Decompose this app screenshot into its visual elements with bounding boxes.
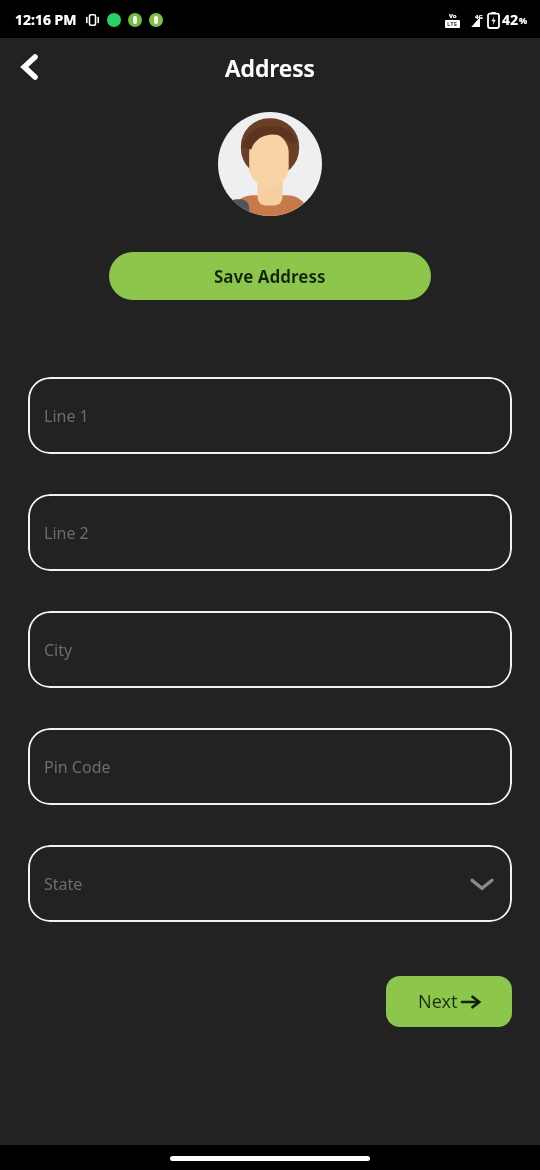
button[interactable]: Line 2 xyxy=(28,494,512,571)
staticText: City xyxy=(44,639,73,661)
staticText: Pin Code xyxy=(44,756,111,778)
button[interactable]: Line 1 xyxy=(28,377,512,454)
staticText: 42 xyxy=(502,10,519,29)
button[interactable]: Back xyxy=(8,45,52,89)
staticText: Address xyxy=(225,52,315,83)
staticText: Vo xyxy=(449,12,457,20)
staticText: % xyxy=(519,14,528,26)
button[interactable]: Save Address xyxy=(109,252,431,300)
staticText: Line 2 xyxy=(44,522,89,544)
button[interactable]: Pin Code xyxy=(28,728,512,805)
staticText: 12:16 PM xyxy=(15,10,77,29)
button[interactable]: City xyxy=(28,611,512,688)
staticText: State xyxy=(44,873,83,895)
staticText: Line 1 xyxy=(44,405,89,427)
button[interactable]: State xyxy=(28,845,512,922)
staticText: Save Address xyxy=(214,265,326,288)
staticText: 4G xyxy=(475,13,483,21)
button[interactable]: Next xyxy=(386,976,512,1027)
staticText: Next xyxy=(418,989,458,1014)
staticText: LTE xyxy=(447,20,458,28)
